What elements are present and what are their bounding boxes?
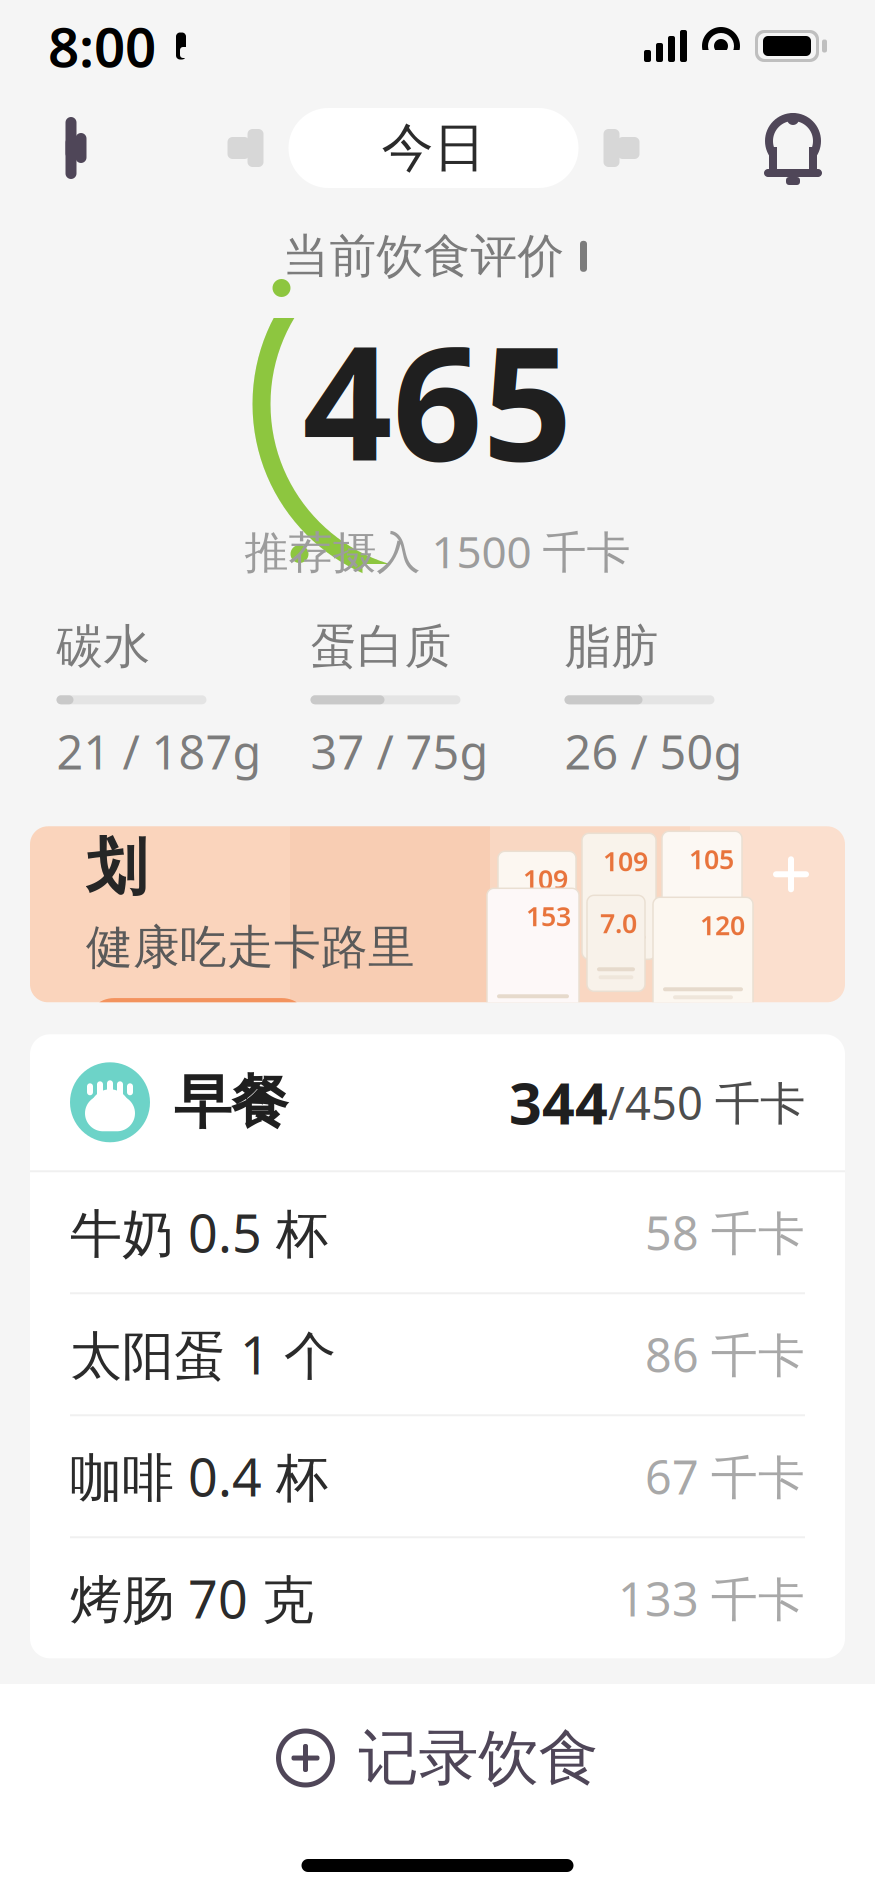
button[interactable]: 记录饮食 (0, 1684, 875, 1832)
staticText: 早餐 (174, 1067, 288, 1137)
staticText: 26 / 50g (564, 720, 742, 782)
button[interactable]: 烤肠 70 克 (30, 1538, 845, 1658)
staticText: 109 (603, 843, 648, 879)
button[interactable]: 全天饮食计划 (30, 826, 845, 1002)
staticText: 105 (689, 841, 734, 877)
staticText: 蛋白质 (310, 618, 451, 675)
staticText: 7.0 (600, 905, 637, 941)
button[interactable]: 通知 (753, 106, 833, 190)
button[interactable]: 牛奶 0.5 杯 (30, 1172, 845, 1292)
staticText: 153 (526, 898, 571, 934)
staticText: 太阳蛋 1 个 (70, 1320, 336, 1389)
staticText: 465 (302, 295, 572, 504)
button[interactable]: 当前饮食评价 (282, 228, 592, 285)
staticText: 109 (523, 861, 568, 897)
staticText: 344 (509, 1064, 608, 1140)
staticText: 碳水 (56, 618, 150, 675)
staticText: 37 / 75g (310, 720, 488, 782)
staticText: 21 / 187g (56, 720, 261, 782)
staticText: 咖啡 0.4 杯 (70, 1442, 328, 1511)
staticText: 烤肠 70 克 (70, 1564, 314, 1633)
staticText: 脂肪 (564, 618, 658, 675)
button[interactable]: 前一天 (216, 119, 274, 177)
button[interactable]: 早餐 (30, 1034, 845, 1170)
button[interactable]: 今日 (288, 108, 578, 188)
staticText: /450 千卡 (608, 1072, 805, 1132)
staticText: 58 千卡 (645, 1201, 805, 1263)
staticText: 推荐摄入 1500 千卡 (244, 522, 630, 580)
staticText: 牛奶 0.5 杯 (70, 1198, 328, 1267)
staticText: 86 千卡 (645, 1323, 805, 1385)
button[interactable]: 咖啡 0.4 杯 (30, 1416, 845, 1536)
staticText: 67 千卡 (645, 1445, 805, 1507)
button[interactable]: 后一天 (592, 119, 650, 177)
button[interactable]: 返回 (42, 108, 114, 188)
staticText: 立即购买 (112, 1010, 284, 1062)
staticText: 记录饮食 (358, 1721, 598, 1795)
staticText: 全天饮食计划 (86, 754, 391, 905)
staticText: 120 (700, 907, 745, 943)
button[interactable]: 太阳蛋 1 个 (30, 1294, 845, 1414)
staticText: 今日 (381, 116, 485, 180)
staticText: 当前饮食评价 (282, 228, 564, 285)
staticText: 8:00 (48, 10, 156, 82)
staticText: 健康吃走卡路里 (86, 919, 415, 976)
staticText: 133 千卡 (618, 1567, 805, 1629)
